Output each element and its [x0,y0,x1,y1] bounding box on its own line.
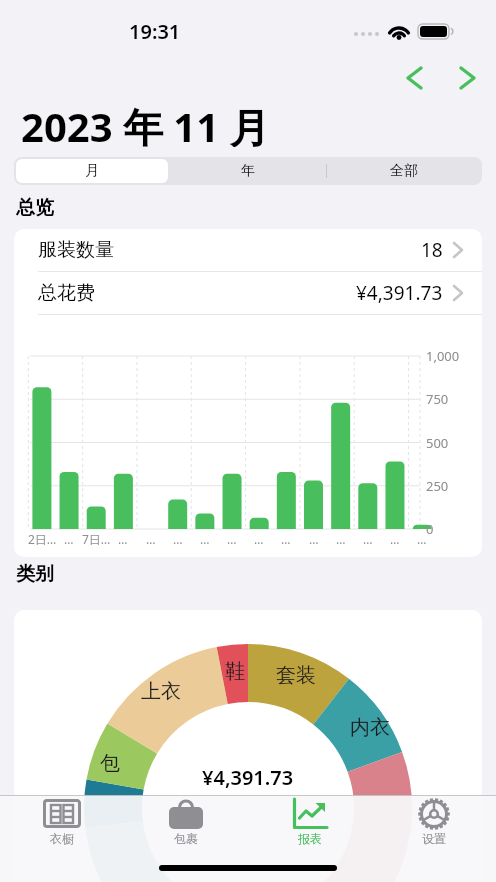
staticText: 设置 [422,831,446,846]
staticText: ¥4,391.73 [202,764,294,790]
staticText: 0 [426,520,434,538]
staticText: 250 [426,477,449,495]
button[interactable]: 报表 [265,797,355,849]
staticText: 2日… [28,531,57,547]
staticText: … [417,531,427,547]
staticText: 衣橱 [50,831,74,846]
staticText: 内衣 [350,715,390,740]
staticText: 总览 [16,196,54,220]
staticText: … [173,531,183,547]
staticText: … [227,531,237,547]
staticText: 套装 [276,663,316,688]
staticText: … [254,531,264,547]
button[interactable]: 全部 [326,157,482,185]
staticText: 2023 年 11 月 [21,99,270,147]
staticText: … [309,531,319,547]
staticText: 报表 [298,831,322,846]
staticText: 500 [426,434,449,452]
staticText: 全部 [390,162,418,180]
button[interactable]: 服装数量 [14,229,482,271]
button[interactable] [395,59,432,96]
button[interactable]: 衣橱 [17,797,107,849]
staticText: 18 [421,237,443,263]
staticText: 上衣 [141,679,181,704]
staticText: … [336,531,346,547]
staticText: 包裹 [174,831,198,846]
button[interactable]: 总花费 [14,272,482,314]
button[interactable] [449,59,486,96]
button[interactable]: 年 [170,157,326,185]
staticText: … [200,531,210,547]
staticText: 750 [426,390,449,408]
staticText: 总花费 [38,281,95,305]
staticText: 19:31 [129,18,181,44]
staticText: 服装数量 [38,238,114,262]
staticText: ¥4,391.73 [356,280,443,306]
button[interactable] [16,159,168,183]
staticText: 1,000 [426,347,460,365]
staticText: 年 [241,162,255,180]
staticText: … [64,531,74,547]
button[interactable]: 包裹 [141,797,231,849]
staticText: 鞋 [225,659,245,684]
staticText: 类别 [16,562,54,586]
staticText: … [146,531,156,547]
staticText: … [281,531,291,547]
staticText: 月 [85,162,99,180]
staticText: 7日… [82,531,111,547]
staticText: … [363,531,373,547]
staticText: … [390,531,400,547]
staticText: … [118,531,128,547]
staticText: 包 [100,751,120,776]
button[interactable]: 设置 [389,797,479,849]
